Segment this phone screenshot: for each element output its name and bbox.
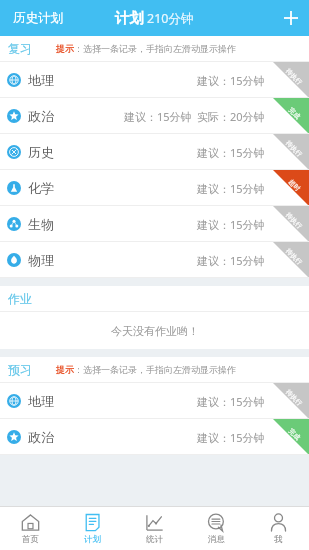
staticText: 预习 — [8, 362, 32, 377]
button[interactable]: 化学 — [0, 170, 309, 206]
staticText: 历史计划 — [13, 10, 63, 26]
staticText: 地理 — [28, 393, 54, 409]
staticText: 完成 — [287, 106, 302, 121]
staticText: 实际：20分钟 — [197, 109, 265, 124]
button[interactable]: 首页 — [0, 507, 61, 550]
staticText: 我 — [274, 534, 283, 545]
staticText: 提示 — [56, 364, 74, 375]
staticText: 待执行 — [284, 67, 304, 87]
staticText: 复习 — [8, 41, 32, 56]
staticText: 待执行 — [284, 247, 304, 267]
staticText: 地理 — [28, 72, 54, 88]
staticText: 统计 — [146, 534, 163, 545]
staticText: 生物 — [28, 216, 54, 232]
button[interactable]: Add plan — [273, 0, 309, 36]
button[interactable]: 地理 — [0, 62, 309, 98]
staticText: 首页 — [22, 534, 39, 545]
button[interactable]: 消息 — [185, 507, 247, 550]
button[interactable]: 统计 — [123, 507, 185, 550]
staticText: 建议：15分钟 — [197, 181, 265, 196]
button[interactable]: 政治 — [0, 98, 309, 134]
staticText: 建议：15分钟 — [197, 394, 265, 409]
staticText: ：选择一条记录，手指向左滑动显示操作 — [74, 43, 236, 54]
button[interactable]: 计划 — [61, 507, 123, 550]
button[interactable]: 历史 — [0, 134, 309, 170]
staticText: 今天没有作业哟！ — [111, 324, 199, 338]
staticText: 完成 — [287, 427, 302, 442]
staticText: ：选择一条记录，手指向左滑动显示操作 — [74, 364, 236, 375]
staticText: 建议：15分钟 — [197, 430, 265, 445]
staticText: 消息 — [208, 534, 225, 545]
staticText: 化学 — [28, 180, 54, 196]
button[interactable]: 我 — [247, 507, 309, 550]
staticText: 210分钟 — [147, 10, 194, 27]
staticText: 建议：15分钟 — [124, 109, 192, 124]
button[interactable]: 物理 — [0, 242, 309, 278]
staticText: 政治 — [28, 108, 54, 124]
button[interactable]: 历史计划 — [0, 2, 76, 34]
staticText: 政治 — [28, 429, 54, 445]
staticText: 建议：15分钟 — [197, 145, 265, 160]
staticText: 建议：15分钟 — [197, 73, 265, 88]
staticText: 建议：15分钟 — [197, 253, 265, 268]
staticText: 建议：15分钟 — [197, 217, 265, 232]
staticText: 作业 — [8, 291, 32, 306]
staticText: 待执行 — [284, 388, 304, 408]
button[interactable]: 生物 — [0, 206, 309, 242]
staticText: 超时 — [287, 178, 302, 193]
staticText: 历史 — [28, 144, 54, 160]
button[interactable]: 地理 — [0, 383, 309, 419]
staticText: 提示 — [56, 43, 74, 54]
staticText: 计划 — [115, 9, 144, 27]
staticText: 计划 — [84, 534, 101, 545]
staticText: 待执行 — [284, 211, 304, 231]
button[interactable]: 政治 — [0, 419, 309, 455]
staticText: 物理 — [28, 252, 54, 268]
staticText: 待执行 — [284, 139, 304, 159]
